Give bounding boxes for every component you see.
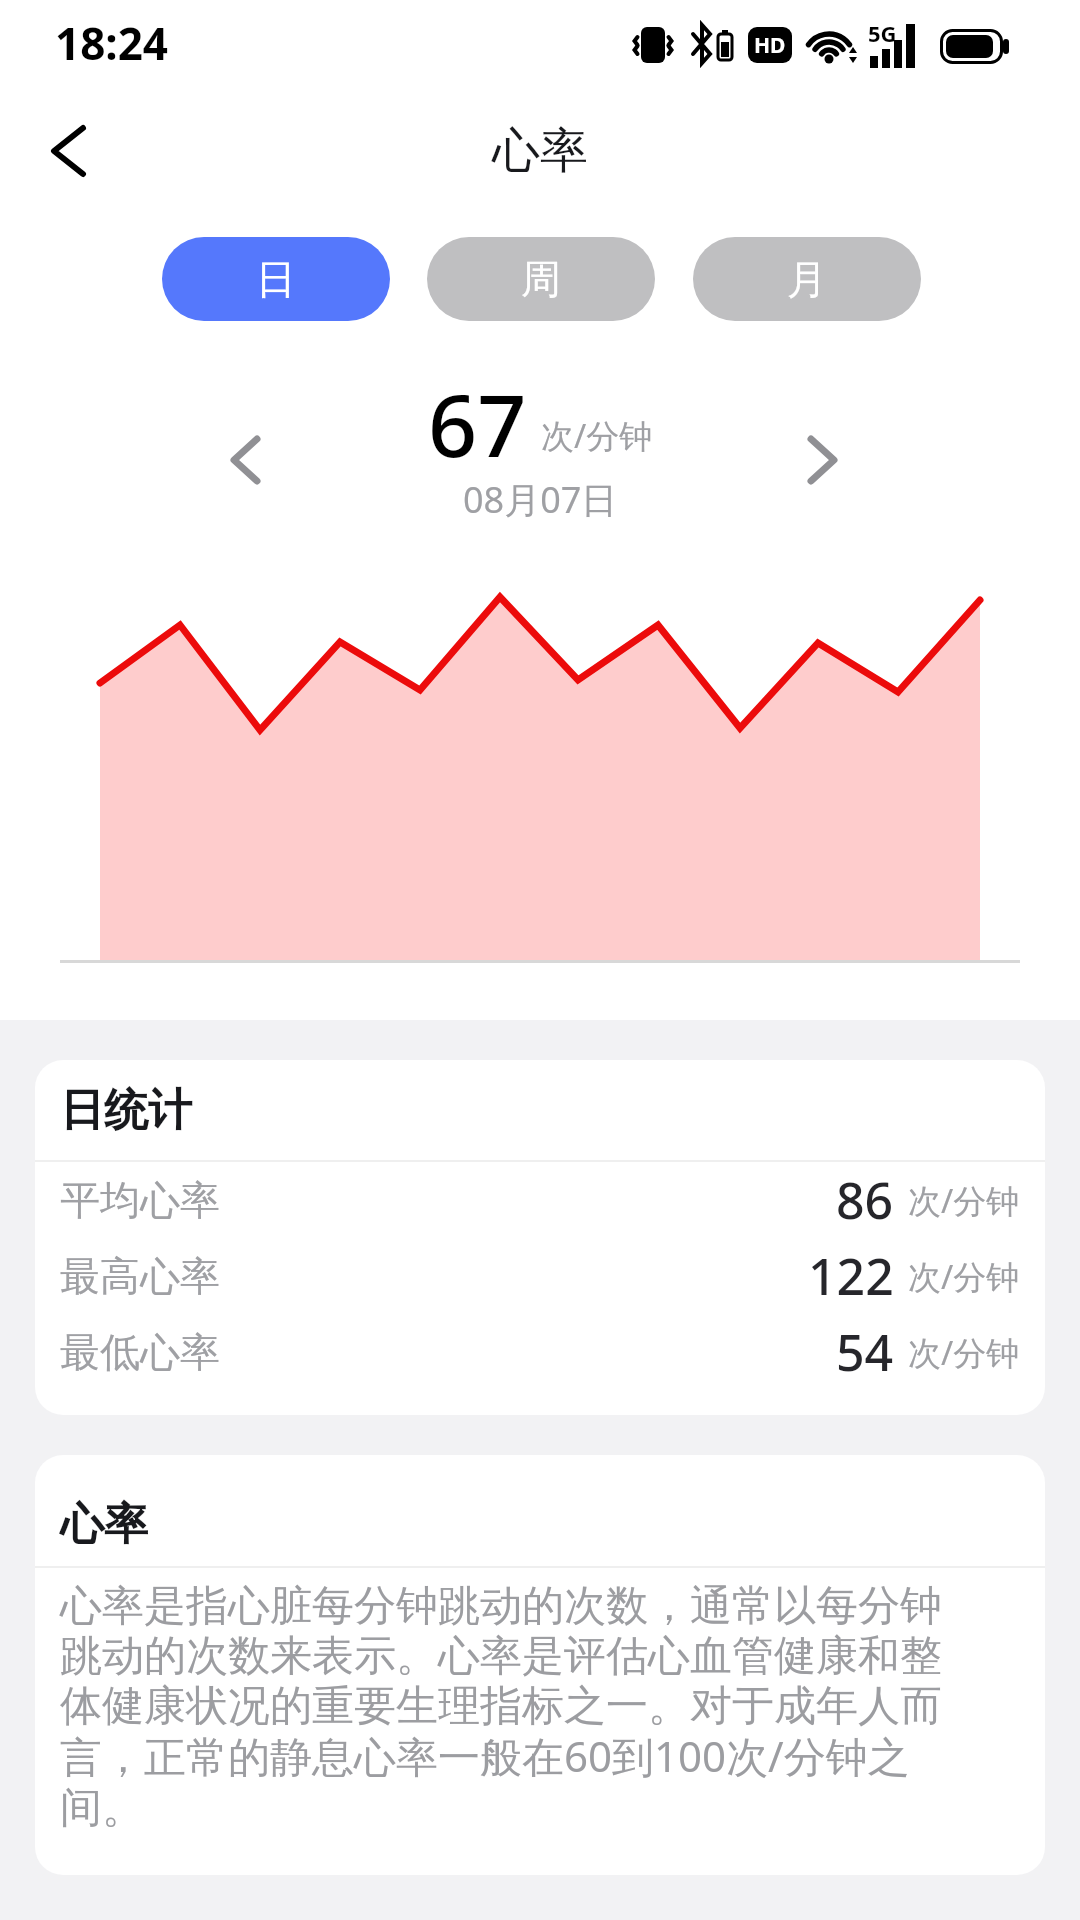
staticText: 最高心率 (60, 1251, 220, 1301)
staticText: 86 (836, 1166, 894, 1234)
button[interactable]: 平均心率 (35, 1162, 1045, 1238)
staticText: 次/分钟 (908, 1254, 1020, 1299)
staticText: 最低心率 (60, 1327, 220, 1377)
staticText: 日统计 (60, 1083, 192, 1138)
staticText: 08月07日 (463, 475, 618, 524)
staticText: 月 (787, 254, 827, 304)
staticText: 67 (428, 365, 527, 482)
staticText: 18:24 (55, 13, 169, 73)
button[interactable] (788, 425, 858, 495)
staticText: 心率 (60, 1497, 148, 1552)
button[interactable]: 最低心率 (35, 1314, 1045, 1390)
staticText: 次/分钟 (908, 1178, 1020, 1223)
staticText: 日 (256, 254, 296, 304)
staticText: 122 (808, 1242, 894, 1310)
staticText: 次/分钟 (908, 1330, 1020, 1375)
staticText: 心率是指心脏每分钟跳动的次数，通常以每分钟 跳动的次数来表示。心率是评估心血管健… (60, 1580, 942, 1835)
button[interactable]: 周 (427, 237, 655, 321)
staticText: 心率 (492, 121, 588, 181)
button[interactable]: 月 (693, 237, 921, 321)
button[interactable]: 日 (162, 237, 390, 321)
staticText: 54 (836, 1318, 894, 1386)
staticText: HD (754, 31, 786, 60)
button[interactable] (210, 425, 280, 495)
staticText: 次/分钟 (541, 413, 653, 458)
staticText: 平均心率 (60, 1175, 220, 1225)
button[interactable]: 最高心率 (35, 1238, 1045, 1314)
button[interactable] (28, 111, 108, 191)
staticText: 5G (868, 18, 897, 48)
staticText: 周 (521, 254, 561, 304)
